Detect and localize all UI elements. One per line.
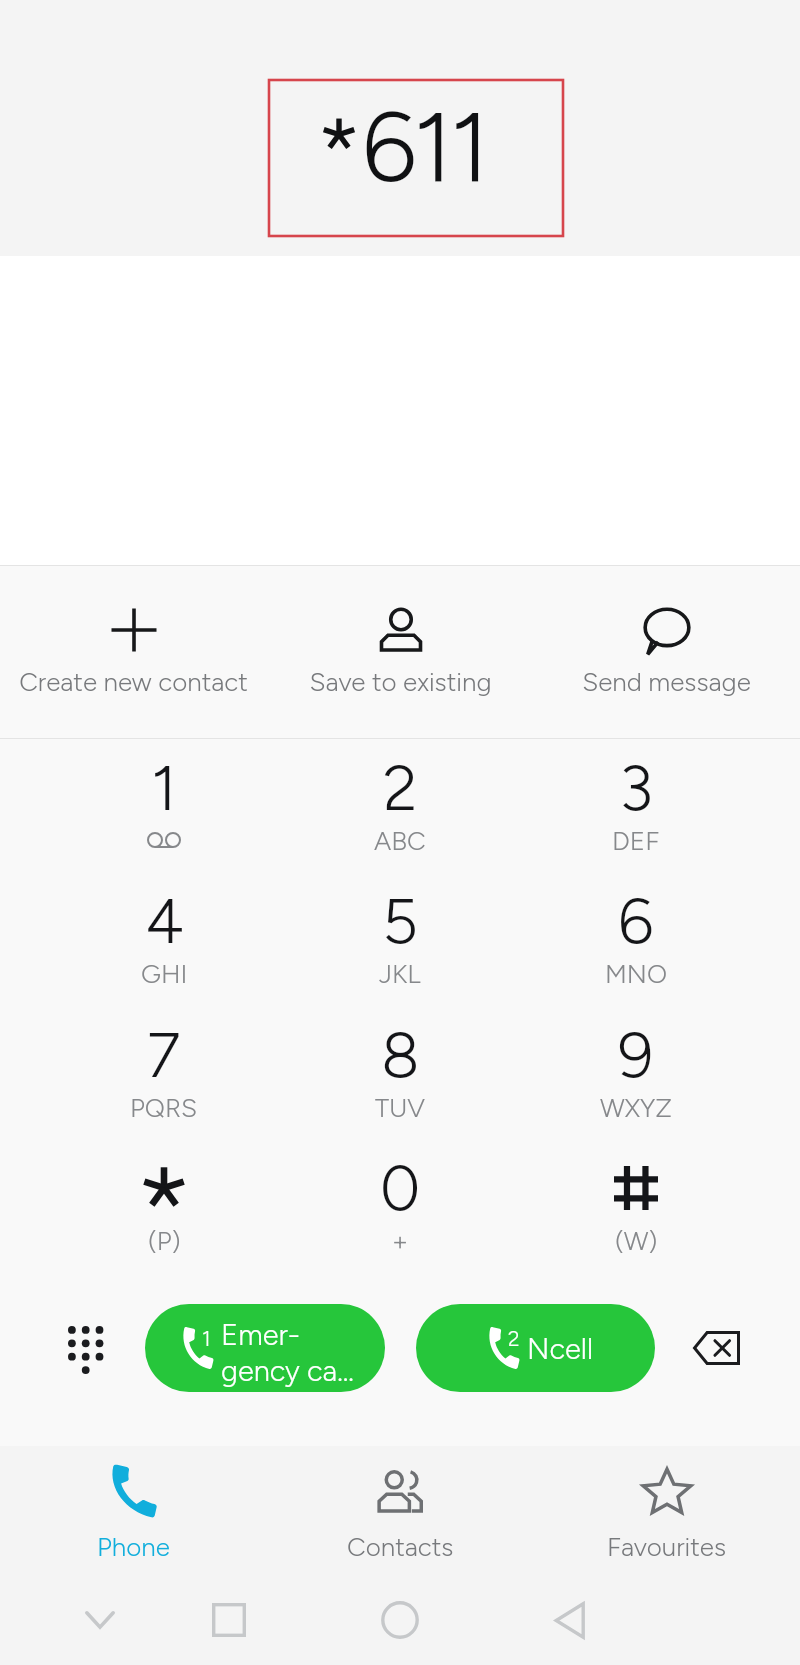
staticText: Create new contact [19, 666, 248, 697]
staticText: Send message [582, 666, 751, 697]
staticText: 1 [151, 750, 177, 826]
button[interactable]: Favourites [533, 1450, 800, 1580]
staticText: Ncell [527, 1331, 594, 1366]
staticText: 7 [147, 1017, 181, 1093]
button[interactable]: 9 [518, 1017, 754, 1150]
button[interactable]: 0 [282, 1150, 518, 1283]
staticText: 8 [381, 1017, 420, 1093]
button[interactable]: Recent apps [179, 1577, 279, 1663]
staticText: + [392, 1225, 409, 1256]
staticText: 4 [145, 883, 184, 959]
staticText: WXYZ [600, 1092, 673, 1123]
staticText: TUV [375, 1092, 426, 1123]
staticText: PQRS [130, 1092, 198, 1123]
staticText: Save to existing [309, 666, 492, 697]
staticText: 3 [619, 750, 653, 826]
button[interactable]: 3 [518, 750, 754, 883]
button[interactable]: Backspace [668, 1300, 764, 1396]
staticText: ABC [374, 825, 426, 856]
button[interactable]: 1 [46, 750, 282, 883]
button[interactable]: Phone [0, 1450, 267, 1580]
staticText: Phone [97, 1531, 170, 1562]
staticText: (W) [615, 1225, 658, 1256]
button[interactable]: Home [350, 1577, 450, 1663]
staticText: JKL [379, 958, 421, 989]
staticText: (P) [148, 1225, 181, 1256]
button[interactable]: 2 [416, 1304, 655, 1392]
button[interactable]: Create new contact [0, 576, 267, 736]
button[interactable]: 6 [518, 883, 754, 1016]
staticText: 611 [362, 89, 487, 205]
staticText: 9 [618, 1017, 654, 1093]
button[interactable]: (W) [518, 1150, 754, 1283]
button[interactable]: Contacts [267, 1450, 534, 1580]
staticText: DEF [612, 825, 660, 856]
button[interactable]: Save to existing [267, 576, 534, 736]
staticText: 5 [382, 883, 419, 959]
staticText: 6 [618, 883, 654, 959]
button[interactable]: Back [519, 1577, 619, 1663]
staticText: 1 [202, 1326, 211, 1351]
staticText: 2 [383, 750, 418, 826]
button[interactable]: 4 [46, 883, 282, 1016]
button[interactable]: 2 [282, 750, 518, 883]
staticText: GHI [141, 958, 188, 989]
staticText: Favourites [607, 1531, 727, 1562]
button[interactable]: 8 [282, 1017, 518, 1150]
button[interactable]: Show dialpad [24, 1300, 146, 1396]
button[interactable]: 1 [145, 1304, 385, 1392]
button[interactable]: 7 [46, 1017, 282, 1150]
button[interactable]: 5 [282, 883, 518, 1016]
button[interactable]: Send message [533, 576, 800, 736]
staticText: Emer- gency ca... [221, 1317, 354, 1389]
button[interactable]: (P) [46, 1150, 282, 1283]
staticText: MNO [605, 958, 668, 989]
staticText: 0 [380, 1150, 421, 1226]
button[interactable]: Hide keyboard [50, 1577, 150, 1663]
staticText: 2 [508, 1326, 520, 1351]
staticText: Contacts [347, 1531, 454, 1562]
